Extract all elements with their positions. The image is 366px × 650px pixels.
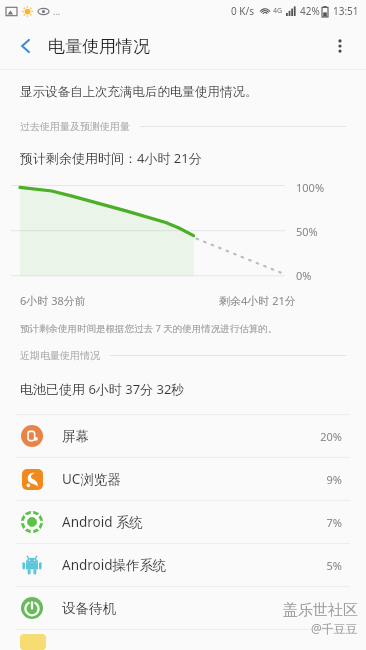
staticText: 设备待机 xyxy=(62,600,116,617)
staticText: ... xyxy=(53,5,61,17)
staticText: 近期电量使用情况 xyxy=(20,349,100,362)
button[interactable]: Android 系统 xyxy=(0,501,366,543)
staticText: 屏幕 xyxy=(62,428,89,445)
staticText: 9% xyxy=(326,472,342,487)
button[interactable]: Android操作系统 xyxy=(0,544,366,586)
staticText: Android操作系统 xyxy=(62,556,167,574)
staticText: 42% xyxy=(300,4,320,18)
staticText: 剩余4小时 21分 xyxy=(219,293,296,308)
staticText: 电池已使用 6小时 37分 32秒 xyxy=(20,380,185,398)
staticText: 过去使用量及预测使用量 xyxy=(20,120,130,133)
staticText: 0% xyxy=(296,268,312,283)
staticText: 电量使用情况 xyxy=(48,36,150,57)
button[interactable]: 设备待机 xyxy=(0,587,366,629)
staticText: @千豆豆 xyxy=(311,620,358,636)
staticText: 5% xyxy=(326,558,342,573)
staticText: 50% xyxy=(296,224,318,239)
staticText: 盖乐世社区 xyxy=(283,601,358,620)
button[interactable]: UC浏览器 xyxy=(0,458,366,500)
staticText: 4G xyxy=(273,6,283,16)
button[interactable]: Back xyxy=(6,26,46,66)
staticText: 预计剩余使用时间：4小时 21分 xyxy=(20,149,202,167)
staticText: 预计剩余使用时间是根据您过去 7 天的使用情况进行估算的。 xyxy=(20,322,278,335)
staticText: 显示设备自上次充满电后的电量使用情况。 xyxy=(20,84,258,100)
button[interactable]: 屏幕 xyxy=(0,415,366,457)
staticText: UC浏览器 xyxy=(62,470,121,488)
button[interactable]: More options xyxy=(320,26,360,66)
staticText: 0 K/s xyxy=(231,4,255,18)
staticText: 100% xyxy=(296,180,325,195)
staticText: 13:51 xyxy=(333,4,359,18)
staticText: Android 系统 xyxy=(62,513,144,531)
staticText: 20% xyxy=(320,429,342,444)
staticText: 6小时 38分前 xyxy=(20,293,86,308)
staticText: 7% xyxy=(326,515,342,530)
